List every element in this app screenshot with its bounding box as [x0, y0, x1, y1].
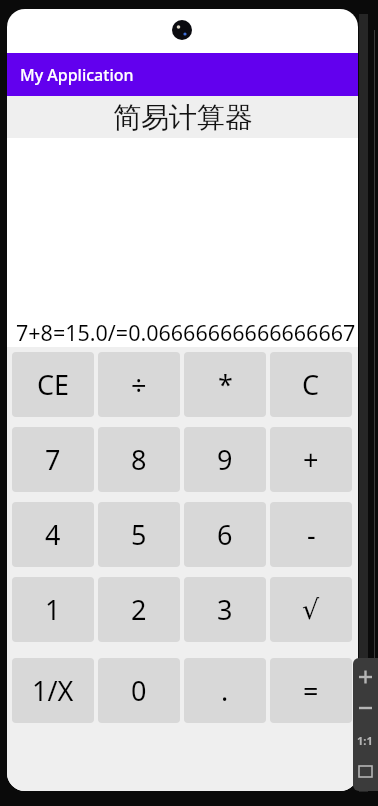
- staticText: 4: [45, 516, 61, 553]
- button[interactable]: CE: [12, 352, 94, 417]
- button[interactable]: 1: [12, 577, 94, 642]
- staticText: 5: [131, 516, 147, 553]
- staticText: -: [307, 516, 316, 553]
- button[interactable]: 9: [184, 427, 266, 492]
- staticText: *: [218, 366, 233, 403]
- staticText: CE: [37, 366, 70, 403]
- button[interactable]: 1/X: [12, 658, 94, 723]
- button[interactable]: *: [184, 352, 266, 417]
- staticText: +: [303, 441, 319, 478]
- button[interactable]: =: [270, 658, 352, 723]
- button[interactable]: .: [184, 658, 266, 723]
- staticText: 1:1: [357, 733, 373, 748]
- staticText: ÷: [131, 366, 147, 403]
- button[interactable]: ÷: [98, 352, 180, 417]
- staticText: 8: [131, 441, 147, 478]
- staticText: 简易计算器: [113, 100, 253, 135]
- staticText: 2: [131, 591, 147, 628]
- staticText: 3: [217, 591, 233, 628]
- staticText: 7: [45, 441, 61, 478]
- staticText: √: [302, 594, 320, 625]
- staticText: 7+8=15.0/=0.06666666666666667: [16, 318, 356, 347]
- staticText: My Application: [20, 64, 134, 86]
- staticText: =: [303, 672, 319, 709]
- staticText: 0: [131, 672, 147, 709]
- button[interactable]: √: [270, 577, 352, 642]
- button[interactable]: 2: [98, 577, 180, 642]
- button[interactable]: 0: [98, 658, 180, 723]
- button[interactable]: 6: [184, 502, 266, 567]
- button[interactable]: My Application: [7, 53, 358, 96]
- staticText: 6: [217, 516, 233, 553]
- button[interactable]: -: [270, 502, 352, 567]
- button[interactable]: 8: [98, 427, 180, 492]
- button[interactable]: +: [270, 427, 352, 492]
- staticText: 1/X: [32, 672, 74, 709]
- staticText: C: [302, 366, 320, 403]
- button[interactable]: 7: [12, 427, 94, 492]
- button[interactable]: 4: [12, 502, 94, 567]
- button[interactable]: 3: [184, 577, 266, 642]
- button[interactable]: 5: [98, 502, 180, 567]
- staticText: 1: [45, 591, 61, 628]
- button[interactable]: C: [270, 352, 352, 417]
- staticText: 9: [217, 441, 233, 478]
- staticText: .: [221, 672, 229, 709]
